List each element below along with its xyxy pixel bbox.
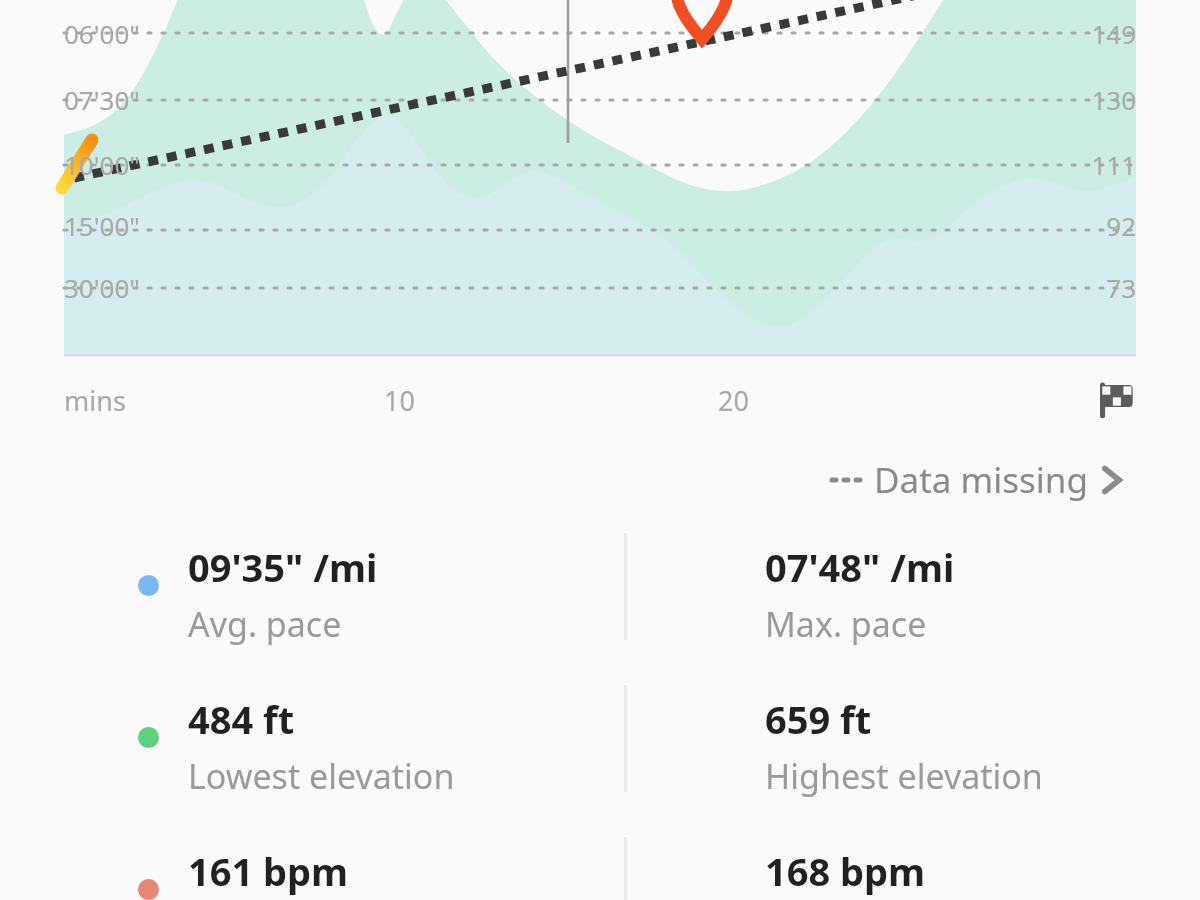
staticText: 130 <box>1040 82 1136 117</box>
staticText: Lowest elevation <box>188 753 455 799</box>
button[interactable] <box>120 525 610 645</box>
button[interactable] <box>120 677 610 797</box>
staticText: 20 <box>718 382 749 419</box>
button[interactable] <box>120 829 610 900</box>
staticText: 659 ft <box>765 693 872 745</box>
staticText: 149 <box>1040 16 1136 51</box>
staticText: 168 bpm <box>765 845 926 897</box>
staticText: 111 <box>1040 147 1136 182</box>
staticText: 92 <box>1040 208 1136 243</box>
button[interactable] <box>700 829 1140 900</box>
staticText: Max. pace <box>765 601 927 647</box>
staticText: Data missing <box>874 456 1089 504</box>
button[interactable] <box>700 525 1140 645</box>
staticText: 10 <box>384 382 415 419</box>
staticText: 09'35" /mi <box>188 541 378 593</box>
button[interactable]: Data missing <box>826 452 1131 508</box>
staticText: 15'00" <box>64 208 140 243</box>
staticText: mins <box>64 382 126 419</box>
button[interactable] <box>700 677 1140 797</box>
staticText: 06'00" <box>64 16 140 51</box>
staticText: Highest elevation <box>765 753 1043 799</box>
button[interactable]: Finish <box>1094 378 1138 422</box>
staticText: 161 bpm <box>188 845 349 897</box>
staticText: 484 ft <box>188 693 295 745</box>
staticText: 10'00" <box>64 147 140 182</box>
staticText: 07'48" /mi <box>765 541 955 593</box>
staticText: 73 <box>1040 270 1136 305</box>
staticText: 30'00" <box>64 270 140 305</box>
staticText: 07'30" <box>64 82 140 117</box>
staticText: Avg. pace <box>188 601 342 647</box>
